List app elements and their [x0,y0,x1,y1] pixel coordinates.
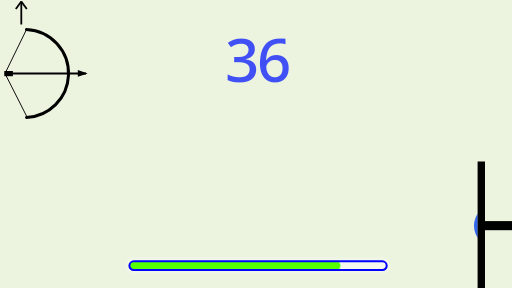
button[interactable]: Bow, drag to aim [0,0,92,120]
button[interactable]: 36 [225,18,290,100]
button[interactable]: Target post [472,158,512,288]
button[interactable]: Playfield, tap to shoot [0,0,512,288]
button[interactable]: Power meter [126,257,390,275]
